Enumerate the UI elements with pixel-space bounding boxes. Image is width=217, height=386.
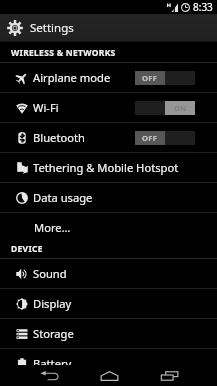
staticText: Tethering & Mobile Hotspot <box>33 160 179 175</box>
button[interactable]: Off <box>135 131 195 145</box>
staticText: Data usage <box>33 190 93 205</box>
button[interactable]: Settings <box>0 14 217 42</box>
staticText: DEVICE <box>11 243 43 255</box>
staticText: OFF <box>142 133 158 143</box>
button[interactable]: More… <box>0 213 217 243</box>
staticText: Wi-Fi <box>33 100 59 115</box>
staticText: Display <box>33 296 72 311</box>
staticText: Storage <box>33 326 74 341</box>
button[interactable]: Airplane mode <box>0 63 217 93</box>
staticText: Bluetooth <box>33 130 85 145</box>
staticText: Settings <box>30 20 74 36</box>
button[interactable]: Bluetooth <box>0 123 217 153</box>
button[interactable]: Back <box>19 365 79 386</box>
button[interactable]: On <box>135 101 195 115</box>
button[interactable]: Home <box>79 365 139 386</box>
button[interactable]: Battery <box>0 349 217 379</box>
button[interactable]: Off <box>135 71 195 85</box>
staticText: WIRELESS & NETWORKS <box>11 47 116 59</box>
button[interactable]: Storage <box>0 319 217 349</box>
staticText: Battery <box>33 356 72 371</box>
staticText: OFF <box>142 73 158 83</box>
button[interactable]: Data usage <box>0 183 217 213</box>
button[interactable]: Sound <box>0 259 217 289</box>
staticText: ON <box>174 103 187 113</box>
staticText: 8:33 <box>193 0 213 14</box>
staticText: Airplane mode <box>33 70 111 85</box>
button[interactable]: Wi-Fi <box>0 93 217 123</box>
staticText: More… <box>34 220 71 235</box>
staticText: Sound <box>33 266 67 281</box>
button[interactable]: Recent apps <box>139 365 199 386</box>
button[interactable]: Tethering & Mobile Hotspot <box>0 153 217 183</box>
button[interactable]: Display <box>0 289 217 319</box>
